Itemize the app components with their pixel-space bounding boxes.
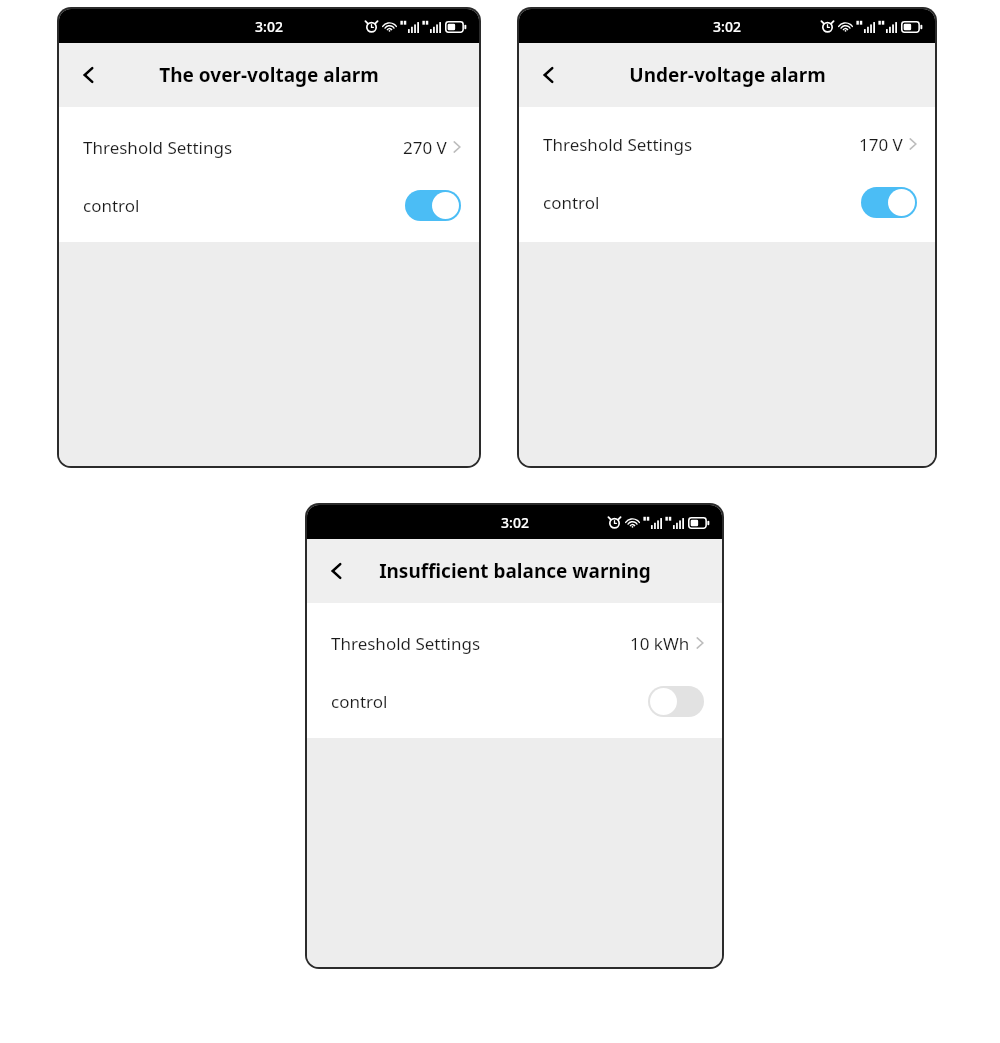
- button[interactable]: Control on: [861, 187, 917, 218]
- staticText: 10 kWh: [630, 632, 690, 655]
- button[interactable]: Control on: [405, 190, 461, 221]
- staticText: The over-voltage alarm: [159, 62, 379, 88]
- button[interactable]: Threshold Settings: [59, 129, 479, 165]
- button[interactable]: control: [59, 181, 479, 229]
- button[interactable]: Back: [529, 55, 569, 95]
- button[interactable]: Back: [69, 55, 109, 95]
- button[interactable]: Back: [317, 551, 357, 591]
- staticText: 3:02: [713, 17, 741, 36]
- staticText: control: [331, 690, 388, 713]
- button[interactable]: Control off: [648, 686, 704, 717]
- staticText: 170 V: [859, 133, 903, 156]
- staticText: 270 V: [403, 136, 447, 159]
- staticText: control: [83, 194, 140, 217]
- button[interactable]: control: [307, 677, 722, 725]
- staticText: 3:02: [501, 513, 529, 532]
- staticText: Under-voltage alarm: [629, 62, 826, 88]
- button[interactable]: Threshold Settings: [307, 625, 722, 661]
- staticText: Insufficient balance warning: [379, 558, 651, 584]
- staticText: control: [543, 191, 600, 214]
- button[interactable]: Threshold Settings: [519, 126, 935, 162]
- staticText: Threshold Settings: [83, 136, 233, 159]
- button[interactable]: control: [519, 178, 935, 226]
- staticText: Threshold Settings: [331, 632, 481, 655]
- staticText: Threshold Settings: [543, 133, 693, 156]
- staticText: 3:02: [255, 17, 283, 36]
